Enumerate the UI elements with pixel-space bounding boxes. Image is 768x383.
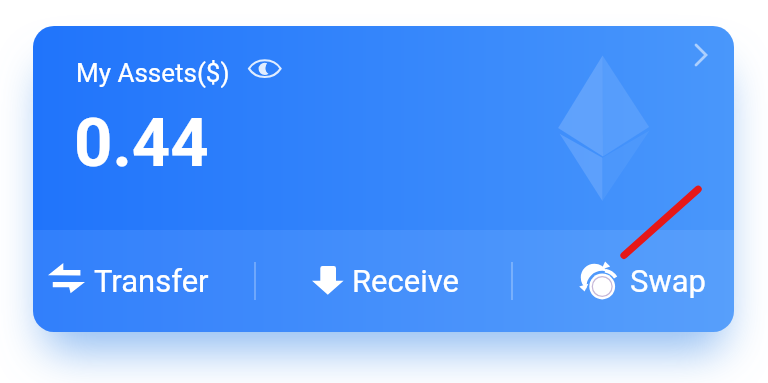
button[interactable]: Receive bbox=[265, 230, 509, 332]
staticText: Receive bbox=[352, 263, 460, 299]
staticText: Transfer bbox=[94, 263, 209, 299]
staticText: Swap bbox=[630, 263, 706, 299]
staticText: 0.44 bbox=[74, 104, 209, 183]
button[interactable]: Transfer bbox=[41, 230, 253, 332]
button[interactable]: Details bbox=[679, 33, 723, 77]
button[interactable]: Swap bbox=[521, 230, 727, 332]
staticText: My Assets($) bbox=[76, 58, 230, 88]
button[interactable]: Hide balance bbox=[248, 58, 282, 80]
